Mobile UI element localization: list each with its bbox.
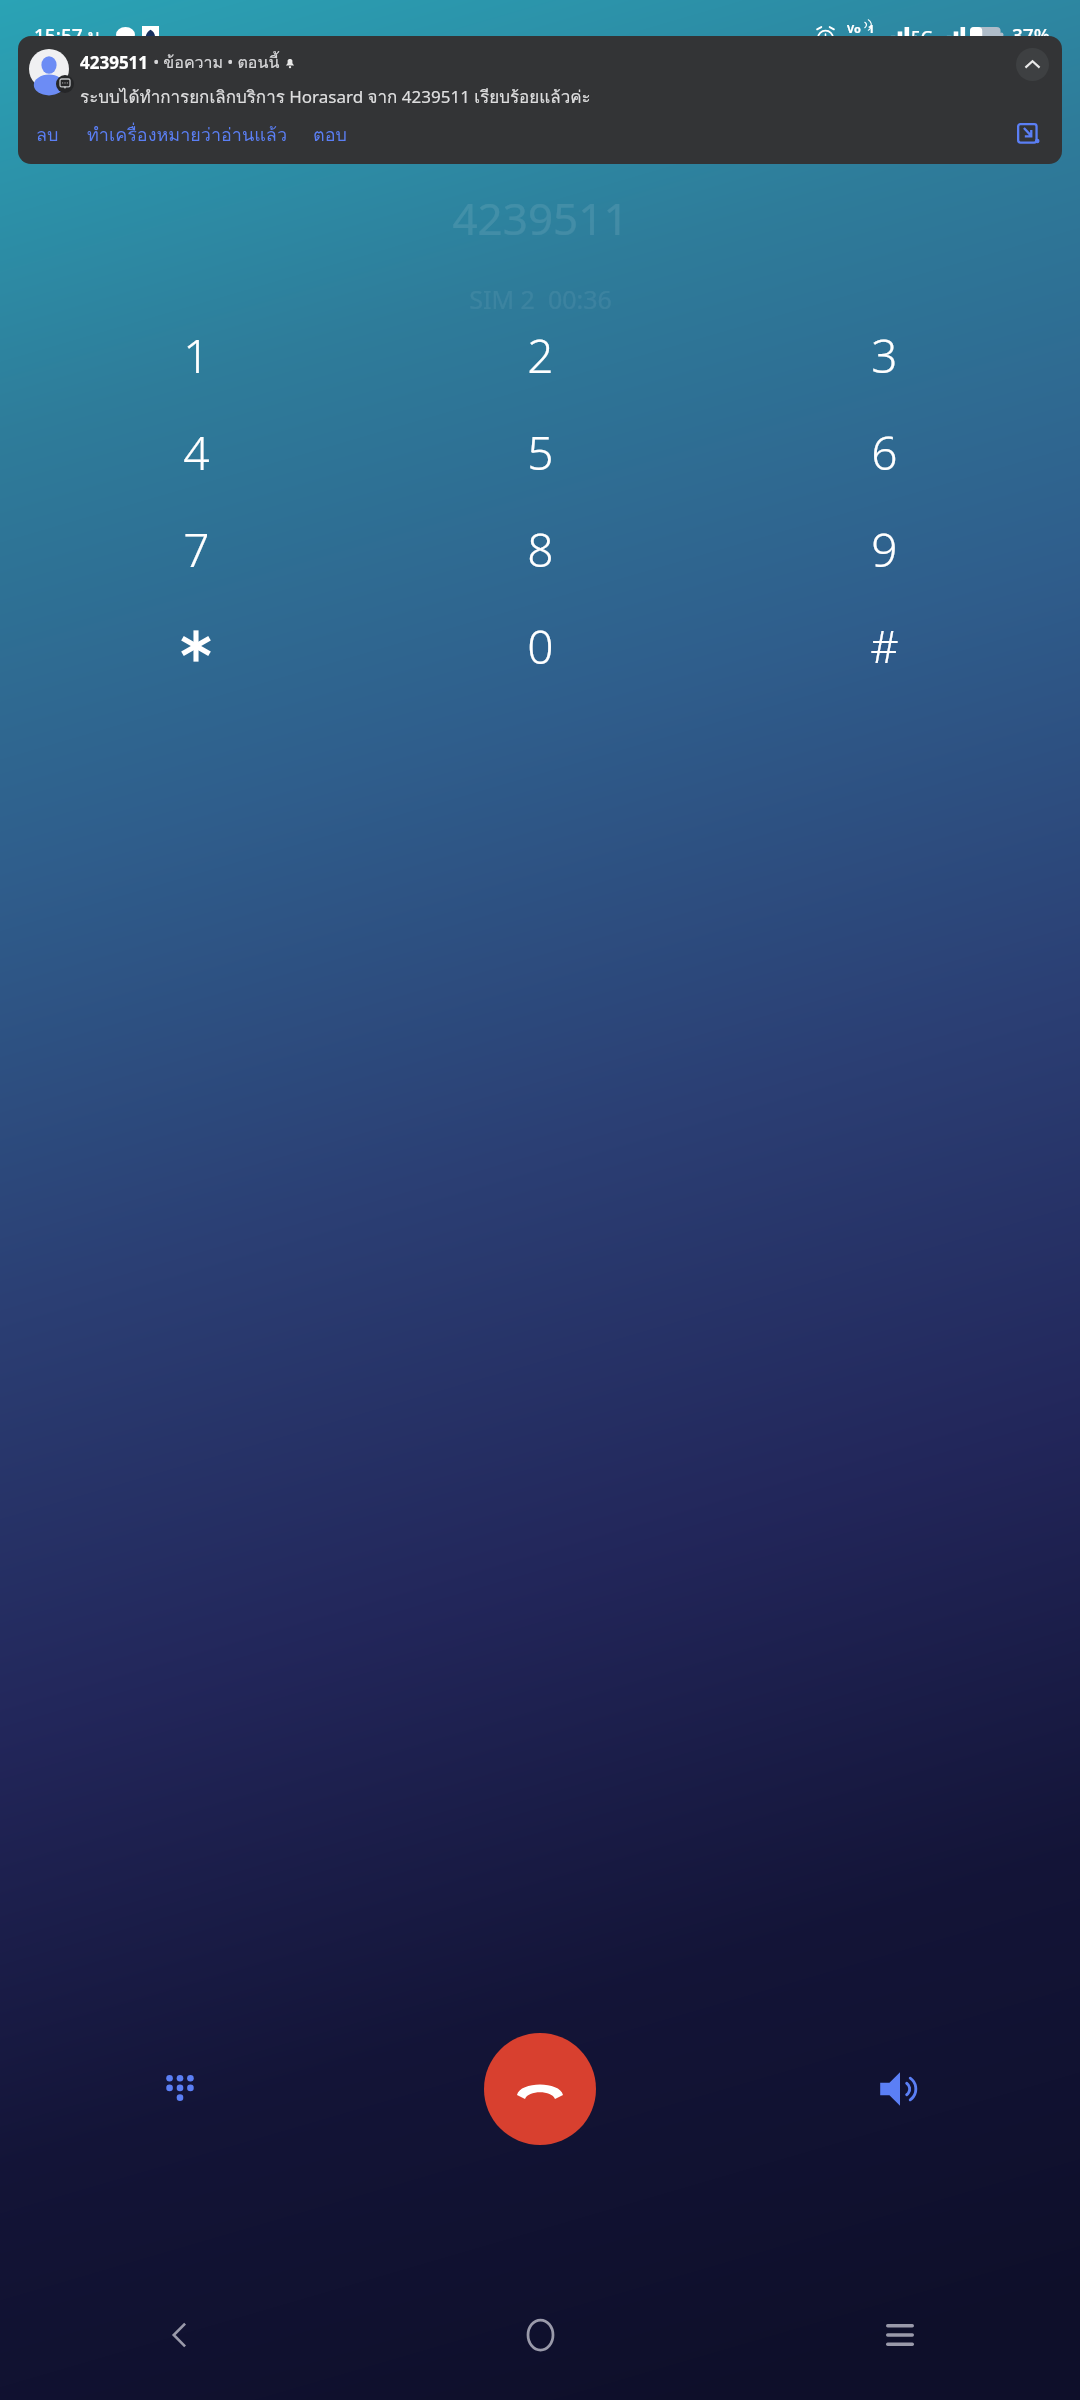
staticText: 1 (868, 21, 875, 36)
button[interactable]: 4239511 (18, 36, 1062, 164)
staticText: ระบบได้ทำการยกเลิกบริการ Horasard จาก 42… (80, 83, 591, 110)
button[interactable]: Recent apps (720, 2296, 1080, 2374)
button[interactable]: 2 (368, 322, 712, 388)
staticText: 2 (527, 324, 554, 387)
button[interactable]: Home (360, 2296, 720, 2374)
button[interactable]: Keypad (0, 2033, 360, 2145)
button[interactable]: ตอบ (313, 120, 347, 149)
staticText: 4239511 (452, 188, 629, 248)
staticText: • ข้อความ • ตอนนี้ (149, 50, 284, 75)
staticText: 37% (1012, 23, 1050, 49)
button[interactable]: 9 (712, 516, 1056, 582)
button[interactable]: 3 (712, 322, 1056, 388)
button[interactable]: 0 (368, 613, 712, 679)
staticText: 8 (527, 518, 554, 581)
staticText: 7 (183, 518, 210, 581)
button[interactable]: 8 (368, 516, 712, 582)
button[interactable]: End call (484, 2033, 596, 2145)
staticText: ตอบ (313, 120, 347, 149)
staticText: 9 (871, 518, 898, 581)
staticText: 0 (527, 615, 554, 678)
button[interactable]: Collapse notification (1016, 48, 1049, 81)
button[interactable]: Speaker (720, 2033, 1080, 2145)
staticText: # (870, 616, 899, 676)
button[interactable]: # (712, 613, 1056, 679)
button[interactable] (24, 613, 368, 679)
button[interactable]: 6 (712, 419, 1056, 485)
button[interactable]: 5 (368, 419, 712, 485)
button[interactable]: Open in bubble (1010, 116, 1046, 152)
staticText: ทำเครื่องหมายว่าอ่านแล้ว (87, 120, 287, 149)
button[interactable]: 7 (24, 516, 368, 582)
button[interactable]: 4 (24, 419, 368, 485)
button[interactable]: Back (0, 2296, 360, 2374)
staticText: ลบ (36, 120, 59, 149)
staticText: 5G (911, 25, 934, 48)
button[interactable]: ทำเครื่องหมายว่าอ่านแล้ว (87, 120, 287, 149)
staticText: SIM 2 00:36 (469, 282, 612, 316)
staticText: 3 (871, 324, 898, 387)
button[interactable]: 1 (24, 322, 368, 388)
staticText: 1 (183, 324, 210, 387)
staticText: 15:57 น. (34, 21, 106, 51)
staticText: 4 (183, 421, 210, 484)
staticText: Vo (847, 21, 861, 36)
staticText: 5 (527, 421, 554, 484)
button[interactable]: ลบ (36, 120, 59, 149)
staticText: 6 (871, 421, 898, 484)
staticText: 4239511 (80, 51, 149, 74)
